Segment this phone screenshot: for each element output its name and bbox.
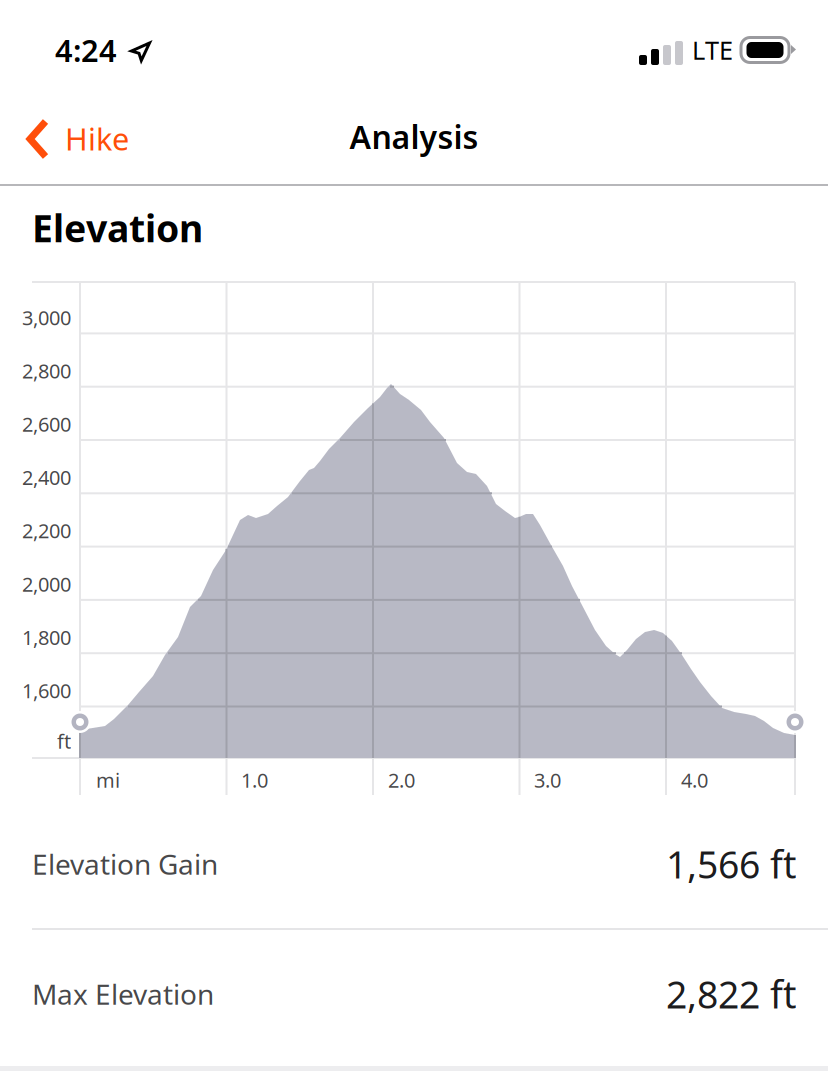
staticText: 3.0: [534, 767, 561, 793]
staticText: 3,000: [22, 304, 71, 331]
staticText: LTE: [692, 33, 733, 67]
staticText: Max Elevation: [32, 975, 214, 1013]
staticText: 4.0: [681, 767, 708, 793]
staticText: Hike: [65, 118, 129, 159]
staticText: 2,000: [22, 571, 71, 597]
staticText: 1.0: [241, 767, 268, 793]
button[interactable]: Elevation Gain: [0, 800, 828, 928]
staticText: Elevation: [32, 203, 203, 253]
staticText: 1,800: [22, 624, 71, 650]
staticText: mi: [96, 767, 120, 793]
staticText: 2,600: [22, 411, 71, 437]
staticText: Analysis: [349, 115, 478, 158]
staticText: Elevation Gain: [32, 845, 218, 883]
button[interactable]: Hike: [0, 91, 147, 180]
staticText: 4:24: [55, 30, 117, 70]
staticText: 2,200: [22, 517, 71, 544]
button[interactable]: Max Elevation: [0, 930, 828, 1058]
staticText: 1,600: [22, 677, 71, 704]
staticText: 1,566 ft: [666, 839, 796, 889]
staticText: 2,400: [22, 464, 71, 491]
staticText: ft: [57, 728, 71, 754]
staticText: 2,800: [22, 357, 71, 384]
staticText: 2,822 ft: [666, 969, 796, 1019]
staticText: 2.0: [388, 767, 415, 793]
